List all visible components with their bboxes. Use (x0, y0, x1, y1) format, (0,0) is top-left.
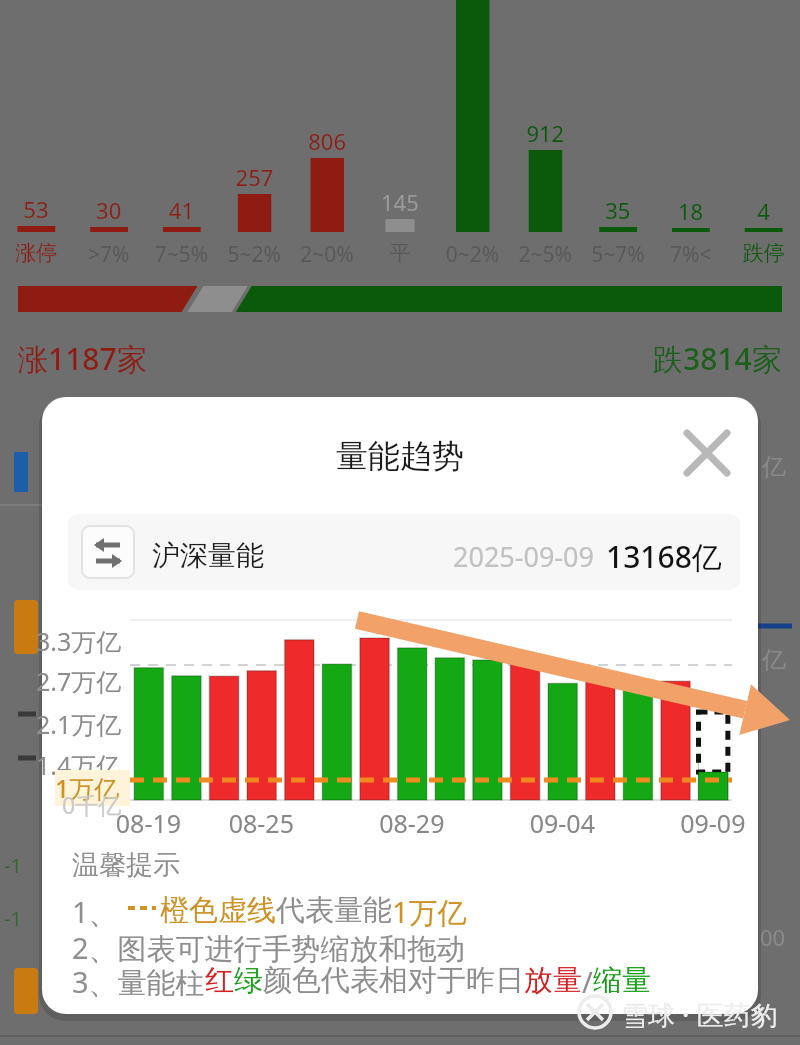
button[interactable] (72, 510, 732, 596)
button[interactable]: 关闭 (672, 420, 740, 488)
